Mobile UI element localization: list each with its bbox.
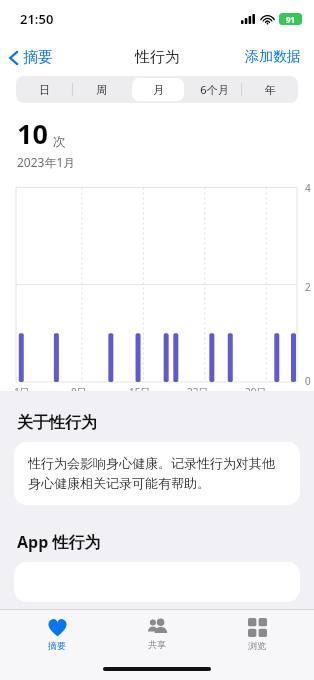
staticText: 关于性行为 <box>17 413 97 433</box>
button[interactable]: 添加数据 <box>232 42 314 72</box>
button[interactable]: 浏览 <box>214 614 300 655</box>
staticText: 15日 <box>129 385 151 399</box>
button[interactable]: 周 <box>75 78 128 101</box>
other: 共享 <box>145 618 169 636</box>
button[interactable]: 月 <box>132 78 184 101</box>
staticText: 2 <box>305 280 311 294</box>
staticText: 年 <box>265 83 276 97</box>
staticText: 共享 <box>148 639 166 650</box>
staticText: 21:50 <box>20 10 54 28</box>
button[interactable]: 6个月 <box>188 78 240 101</box>
staticText: 周 <box>96 83 107 97</box>
staticText: 性行为 <box>135 48 180 67</box>
button[interactable]: 共享 <box>114 614 200 654</box>
staticText: 6个月 <box>200 82 229 97</box>
button[interactable]: 摘要 <box>0 44 61 71</box>
staticText: 8日 <box>71 385 87 399</box>
staticText: 日 <box>39 83 50 97</box>
staticText: 次 <box>53 133 66 149</box>
staticText: 22日 <box>187 385 209 399</box>
staticText: 浏览 <box>248 640 266 651</box>
staticText: 4 <box>305 181 311 195</box>
other: 摘要 <box>47 618 68 637</box>
staticText: 91 <box>286 14 296 25</box>
button[interactable]: 性行为会影响身心健康。记录性行为对其他身心健康相关记录可能有帮助。 <box>14 442 300 505</box>
staticText: 2023年1月 <box>17 154 76 170</box>
staticText: 10 <box>17 115 48 152</box>
staticText: 摘要 <box>23 48 53 67</box>
staticText: 月 <box>153 83 164 97</box>
button[interactable]: 日 <box>18 78 71 101</box>
other: 浏览 <box>248 618 267 637</box>
staticText: App 性行为 <box>17 531 101 553</box>
staticText: 1日 <box>14 385 30 399</box>
button[interactable]: 摘要 <box>14 614 100 655</box>
staticText: 0 <box>305 374 311 388</box>
staticText: 29日 <box>245 385 267 399</box>
button[interactable]: 年 <box>244 78 296 101</box>
staticText: 摘要 <box>48 640 66 651</box>
staticText: 性行为会影响身心健康。记录性行为对其他身心健康相关记录可能有帮助。 <box>28 455 286 492</box>
